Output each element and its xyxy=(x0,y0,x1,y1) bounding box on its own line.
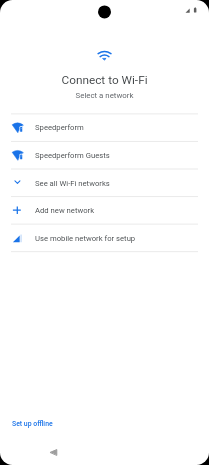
staticText: Speedperform xyxy=(35,123,84,132)
button[interactable]: See all Wi-Fi networks xyxy=(0,169,209,197)
button[interactable]: Use mobile network for setup xyxy=(0,224,209,252)
button[interactable]: Speedperform Guests xyxy=(0,141,209,169)
staticText: Speedperform Guests xyxy=(35,151,110,160)
staticText: Connect to Wi-Fi xyxy=(0,73,209,87)
button[interactable]: Set up offline xyxy=(12,416,53,432)
staticText: See all Wi-Fi networks xyxy=(35,179,110,188)
staticText: Use mobile network for setup xyxy=(35,234,136,243)
button[interactable]: Add new network xyxy=(0,196,209,224)
button[interactable]: Speedperform xyxy=(0,113,209,141)
staticText: Select a network xyxy=(0,91,209,100)
staticText: Set up offline xyxy=(12,420,53,428)
button[interactable]: Back xyxy=(41,440,65,464)
staticText: Add new network xyxy=(35,206,95,215)
